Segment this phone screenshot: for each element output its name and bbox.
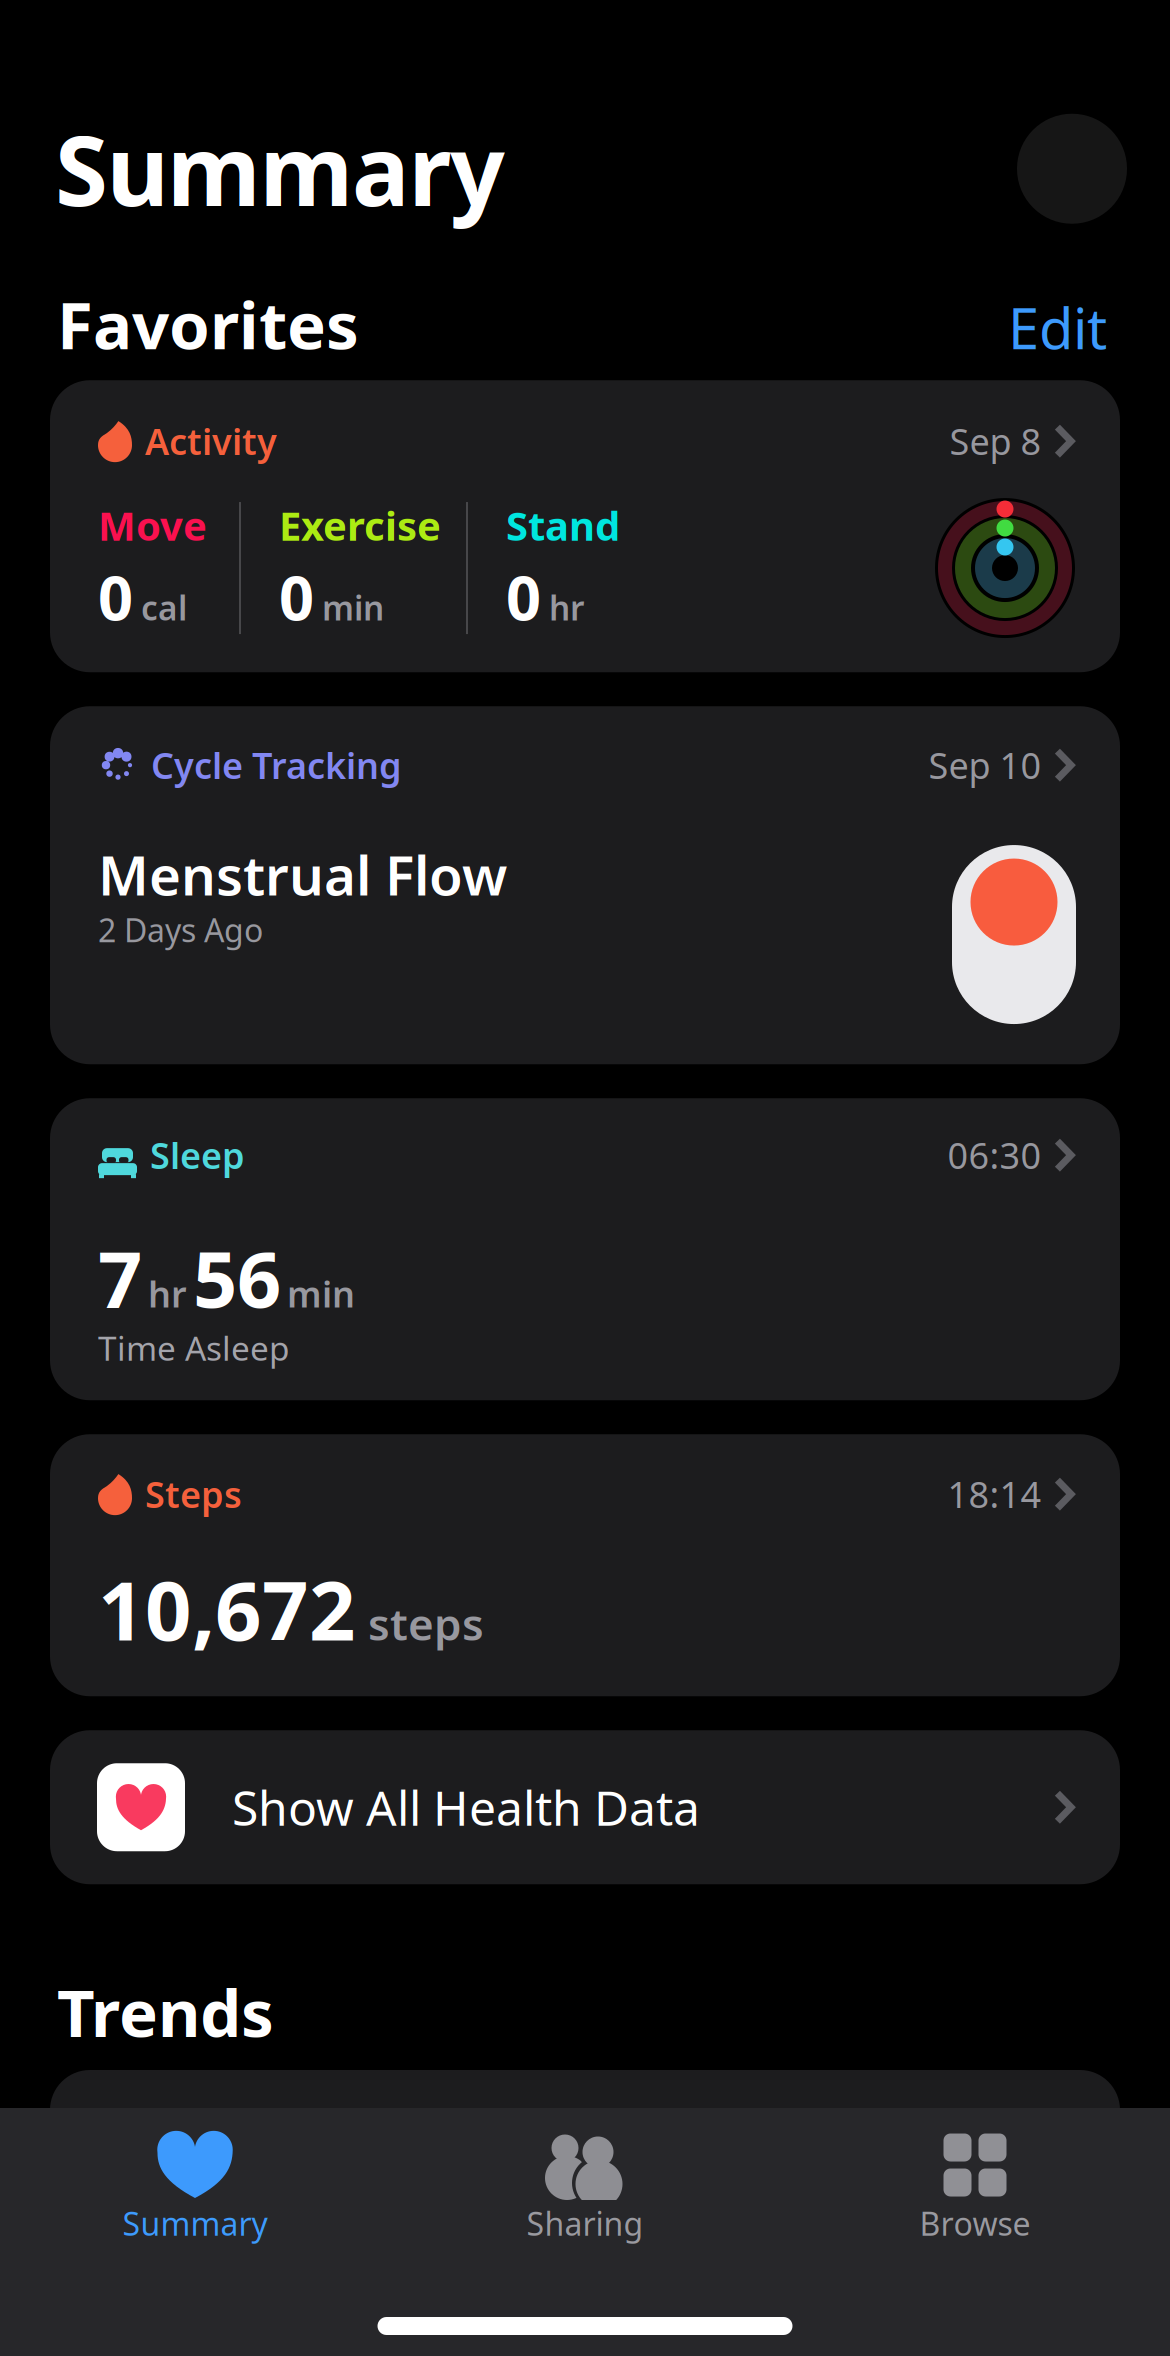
button[interactable]: Show All Health Data [50,1730,1120,1884]
staticText: min [322,585,384,630]
staticText: Browse [919,2202,1030,2244]
staticText: Sep 8 [949,417,1041,465]
button[interactable]: Profile [1017,114,1127,224]
button[interactable]: Edit [1008,290,1107,365]
button[interactable]: Sharing [390,2132,780,2244]
staticText: 0 [98,556,133,637]
staticText: 7 [98,1226,142,1329]
staticText: Time Asleep [98,1326,290,1370]
button[interactable]: Sleep [50,1098,1120,1400]
staticText: hr [148,1269,187,1317]
button[interactable]: Steps [50,1434,1120,1696]
button[interactable]: Activity [50,380,1120,672]
staticText: Stand [506,499,620,552]
staticText: Steps [145,1470,242,1518]
staticText: Summary [55,105,505,232]
staticText: 18:14 [947,1470,1041,1518]
staticText: Trends [57,1968,274,2055]
staticText: 06:30 [947,1131,1041,1179]
button[interactable]: Cycle Tracking [50,706,1120,1064]
staticText: 0 [506,556,541,637]
staticText: Move [98,499,207,552]
staticText: Summary [122,2202,267,2244]
staticText: min [287,1269,355,1317]
staticText: 10,672 [98,1555,356,1663]
staticText: steps [368,1594,484,1653]
staticText: Sharing [526,2202,643,2244]
staticText: Cycle Tracking [151,741,402,789]
staticText: 2 Days Ago [98,909,263,951]
staticText: 56 [193,1226,281,1329]
button[interactable]: Summary [0,2132,390,2244]
staticText: Exercise [279,499,441,552]
staticText: Activity [145,417,277,465]
staticText: 0 [279,556,314,637]
staticText: hr [549,585,584,630]
staticText: Menstrual Flow [98,838,507,911]
staticText: Show All Health Data [232,1775,700,1839]
staticText: Favorites [57,280,359,367]
staticText: Sep 10 [928,741,1041,789]
staticText: cal [141,585,187,630]
staticText: Sleep [150,1131,245,1179]
button[interactable]: Browse [780,2132,1170,2244]
staticText: Edit [1008,290,1107,365]
